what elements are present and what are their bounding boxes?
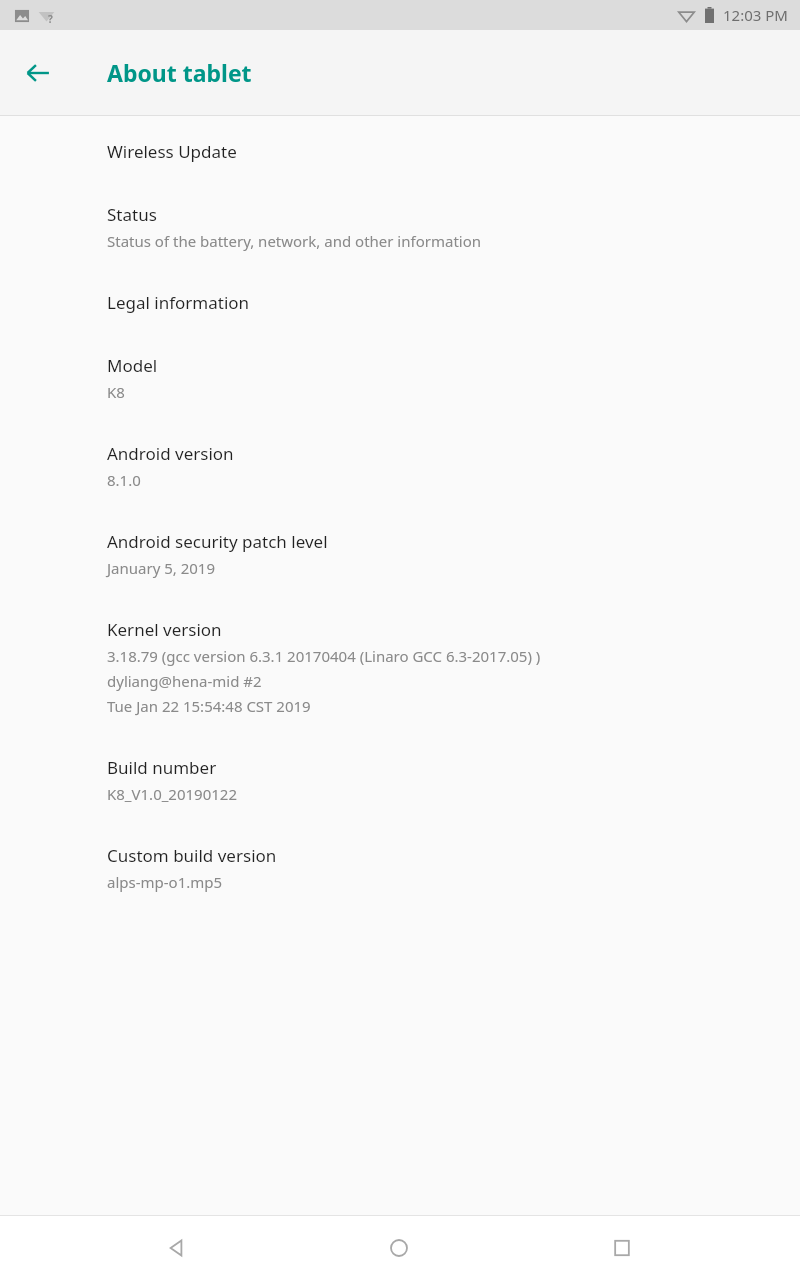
button[interactable]: Kernel version <box>0 618 800 716</box>
staticText: K8_V1.0_20190122 <box>107 784 238 804</box>
staticText: ? <box>48 12 53 24</box>
button[interactable]: Status <box>0 203 800 251</box>
button[interactable]: Home <box>354 1216 444 1280</box>
button[interactable]: Recent apps <box>577 1216 667 1280</box>
staticText: Status of the battery, network, and othe… <box>107 231 482 251</box>
button[interactable]: Build number <box>0 756 800 804</box>
staticText: Status <box>107 203 157 226</box>
staticText: January 5, 2019 <box>107 558 216 578</box>
button[interactable]: Back <box>132 1216 222 1280</box>
staticText: Kernel version <box>107 618 222 641</box>
staticText: alps-mp-o1.mp5 <box>107 872 223 892</box>
staticText: About tablet <box>107 57 252 88</box>
button[interactable]: Back <box>14 49 62 97</box>
staticText: Model <box>107 354 158 377</box>
button[interactable]: Legal information <box>0 291 800 314</box>
staticText: Build number <box>107 756 217 779</box>
staticText: 8.1.0 <box>107 470 141 490</box>
button[interactable]: Custom build version <box>0 844 800 892</box>
staticText: 3.18.79 (gcc version 6.3.1 20170404 (Lin… <box>107 646 541 666</box>
button[interactable]: Android security patch level <box>0 530 800 578</box>
staticText: Tue Jan 22 15:54:48 CST 2019 <box>107 696 311 716</box>
staticText: Custom build version <box>107 844 277 867</box>
staticText: Android security patch level <box>107 530 328 553</box>
staticText: K8 <box>107 382 125 402</box>
staticText: Wireless Update <box>107 140 237 163</box>
staticText: dyliang@hena-mid #2 <box>107 671 262 691</box>
staticText: 12:03 PM <box>723 5 788 25</box>
button[interactable]: Wireless Update <box>0 140 800 163</box>
button[interactable]: Model <box>0 354 800 402</box>
staticText: Android version <box>107 442 234 465</box>
staticText: Legal information <box>107 291 250 314</box>
button[interactable]: Android version <box>0 442 800 490</box>
